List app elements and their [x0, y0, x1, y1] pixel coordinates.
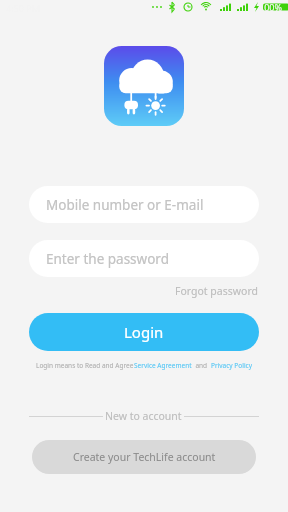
button[interactable]: Privacy Policy — [211, 361, 253, 370]
staticText: Login means to Read and Agree — [36, 361, 134, 370]
staticText: New to account — [105, 409, 182, 423]
button[interactable]: Create your TechLife account — [32, 440, 256, 474]
staticText: and — [192, 361, 211, 370]
staticText: Service Agreement — [134, 361, 192, 370]
staticText: Login — [124, 322, 164, 342]
button[interactable]: Service Agreement — [134, 361, 192, 370]
staticText: Mobile number or E-mail — [46, 196, 204, 214]
staticText: Create your TechLife account — [73, 450, 216, 464]
staticText: Privacy Policy — [211, 361, 253, 370]
staticText: Forgot password — [175, 284, 258, 298]
other: TechLife app logo — [104, 46, 184, 126]
staticText: 100% — [259, 1, 282, 13]
button[interactable]: Mobile number or E-mail — [29, 186, 259, 223]
staticText: Enter the password — [46, 250, 169, 268]
button[interactable]: Enter the password — [29, 240, 259, 277]
button[interactable]: Login — [29, 313, 259, 351]
button[interactable]: Forgot password — [172, 281, 261, 301]
